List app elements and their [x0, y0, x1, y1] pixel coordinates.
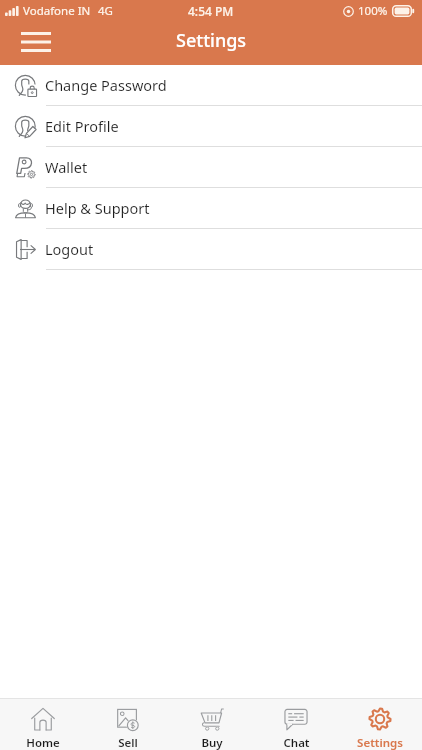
- staticText: Help & Support: [45, 198, 150, 218]
- button[interactable]: Menu: [8, 22, 64, 62]
- button[interactable]: Home: [0, 699, 85, 750]
- staticText: Wallet: [45, 157, 88, 177]
- button[interactable]: Help & Support: [0, 188, 422, 229]
- button[interactable]: Settings: [338, 699, 422, 750]
- button[interactable]: Edit Profile: [0, 106, 422, 147]
- staticText: Change Password: [45, 75, 167, 95]
- staticText: Settings: [357, 735, 403, 750]
- staticText: Chat: [283, 735, 310, 750]
- staticText: 100%: [358, 3, 388, 19]
- staticText: Edit Profile: [45, 116, 119, 136]
- button[interactable]: Buy: [170, 699, 254, 750]
- staticText: 4:54 PM: [188, 3, 234, 19]
- staticText: Buy: [201, 735, 223, 750]
- button[interactable]: Wallet: [0, 147, 422, 188]
- button[interactable]: Logout: [0, 229, 422, 270]
- button[interactable]: Chat: [254, 699, 338, 750]
- staticText: Logout: [45, 239, 94, 259]
- button[interactable]: Sell: [85, 699, 170, 750]
- button[interactable]: Change Password: [0, 65, 422, 106]
- staticText: Sell: [118, 735, 138, 750]
- staticText: Home: [26, 735, 60, 750]
- staticText: 4G: [98, 3, 113, 19]
- staticText: Vodafone IN: [23, 3, 91, 19]
- staticText: Settings: [176, 28, 247, 53]
